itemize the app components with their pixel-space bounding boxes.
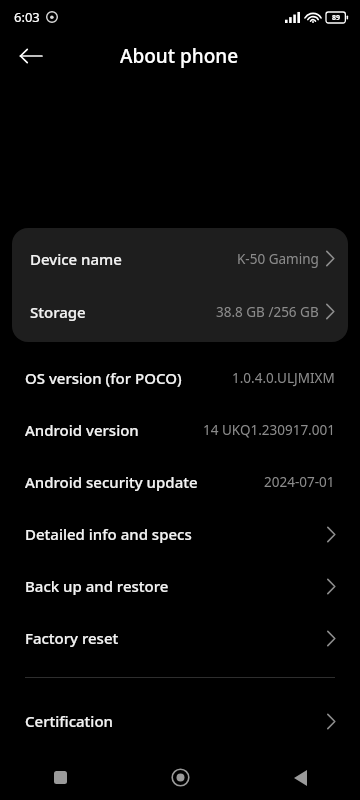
- button[interactable]: Factory reset: [0, 612, 360, 664]
- button[interactable]: Back: [240, 755, 360, 800]
- button[interactable]: Back: [14, 39, 48, 73]
- button[interactable]: Recents: [0, 755, 120, 800]
- staticText: Back up and restore: [25, 576, 169, 596]
- button[interactable]: Back up and restore: [0, 560, 360, 612]
- staticText: 89: [332, 13, 341, 23]
- staticText: Android version: [25, 420, 139, 440]
- staticText: 2024-07-01: [264, 473, 335, 491]
- staticText: OS version (for POCO): [25, 368, 182, 388]
- staticText: Device name: [30, 249, 122, 269]
- staticText: 6:03: [14, 8, 40, 26]
- button[interactable]: Home: [120, 755, 240, 800]
- staticText: Android security update: [25, 472, 198, 492]
- button[interactable]: OS version (for POCO): [0, 352, 360, 404]
- button[interactable]: Android security update: [0, 456, 360, 508]
- staticText: K-50 Gaming: [237, 250, 319, 268]
- button[interactable]: Android version: [0, 404, 360, 456]
- button[interactable]: Device name: [12, 232, 348, 285]
- staticText: 38.8 GB /256 GB: [216, 303, 319, 321]
- staticText: Storage: [30, 302, 86, 322]
- button[interactable]: Certification: [0, 695, 360, 747]
- staticText: 14 UKQ1.230917.001: [203, 421, 335, 439]
- button[interactable]: Detailed info and specs: [0, 508, 360, 560]
- staticText: About phone: [120, 43, 239, 69]
- staticText: Detailed info and specs: [25, 524, 192, 544]
- button[interactable]: Storage: [12, 285, 348, 338]
- staticText: 1.0.4.0.ULJMIXM: [232, 369, 335, 387]
- staticText: Certification: [25, 711, 113, 731]
- staticText: Factory reset: [25, 628, 119, 648]
